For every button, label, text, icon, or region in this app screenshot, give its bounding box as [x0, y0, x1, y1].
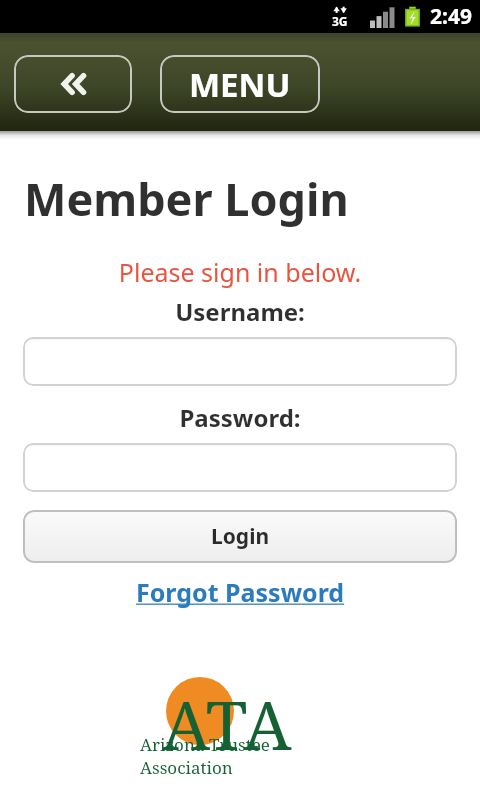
button[interactable] [23, 443, 457, 492]
staticText: Forgot Password [136, 575, 345, 609]
staticText: Password: [0, 401, 480, 434]
staticText: Login [211, 522, 270, 551]
button[interactable]: Back [14, 55, 132, 113]
button[interactable] [23, 337, 457, 386]
staticText: 3G [332, 13, 348, 29]
staticText: MENU [189, 62, 291, 107]
button[interactable]: MENU [160, 55, 320, 113]
staticText: Please sign in below. [0, 255, 480, 289]
staticText: Username: [0, 295, 480, 328]
staticText: 2:49 [430, 2, 472, 31]
button[interactable]: Login [23, 510, 457, 563]
staticText: Arizona Trustee Association [140, 733, 340, 779]
staticText: ATA [162, 677, 292, 770]
staticText: Member Login [24, 168, 349, 229]
button[interactable]: Forgot Password [0, 575, 480, 609]
